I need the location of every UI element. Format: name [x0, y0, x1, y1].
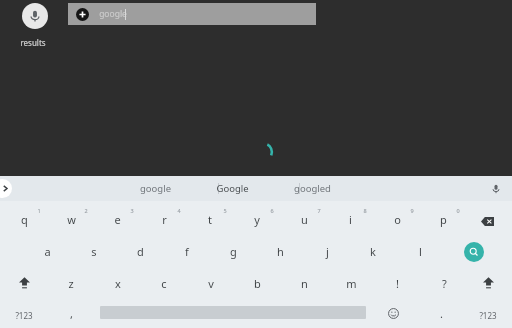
- staticText: 9: [410, 207, 414, 214]
- staticText: c: [161, 276, 167, 291]
- button[interactable]: 6: [249, 199, 295, 221]
- button[interactable]: Emoji: [385, 305, 401, 321]
- button[interactable]: q: [1, 208, 47, 230]
- staticText: results: [20, 37, 46, 48]
- button[interactable]: 1: [16, 199, 62, 221]
- staticText: ?123: [15, 310, 33, 321]
- staticText: ,: [70, 306, 73, 321]
- staticText: google: [140, 182, 171, 195]
- staticText: e: [114, 212, 121, 227]
- staticText: ?123: [479, 310, 497, 321]
- button[interactable]: Expand suggestions: [0, 179, 12, 198]
- staticText: 2: [84, 207, 88, 214]
- button[interactable]: f: [164, 240, 210, 262]
- button[interactable]: 7: [296, 199, 342, 221]
- staticText: 4: [177, 207, 181, 214]
- staticText: m: [346, 276, 357, 291]
- button[interactable]: l: [397, 240, 443, 262]
- button[interactable]: w: [48, 208, 94, 230]
- staticText: g: [230, 244, 237, 259]
- button[interactable]: Add: [76, 8, 89, 21]
- button[interactable]: c: [141, 272, 187, 294]
- staticText: k: [370, 244, 376, 259]
- staticText: ?: [442, 276, 447, 291]
- staticText: q: [21, 212, 28, 227]
- button[interactable]: a: [24, 240, 70, 262]
- staticText: 6: [270, 207, 274, 214]
- button[interactable]: Backspace: [473, 211, 501, 231]
- staticText: f: [185, 244, 189, 259]
- button[interactable]: Voice search: [22, 3, 48, 29]
- button[interactable]: Google: [192, 176, 272, 201]
- staticText: p: [440, 212, 447, 227]
- button[interactable]: s: [71, 240, 117, 262]
- button[interactable]: d: [117, 240, 163, 262]
- staticText: w: [67, 212, 76, 227]
- button[interactable]: p: [420, 208, 466, 230]
- button[interactable]: u: [281, 208, 327, 230]
- button[interactable]: 8: [342, 199, 388, 221]
- button[interactable]: 0: [435, 199, 481, 221]
- button[interactable]: m: [328, 272, 374, 294]
- button[interactable]: x: [95, 272, 141, 294]
- button[interactable]: 4: [156, 199, 202, 221]
- staticText: !: [396, 276, 399, 291]
- staticText: s: [91, 244, 97, 259]
- staticText: b: [254, 276, 261, 291]
- staticText: u: [301, 212, 308, 227]
- button[interactable]: 9: [389, 199, 435, 221]
- button[interactable]: ?123: [1, 304, 47, 326]
- button[interactable]: Search: [464, 242, 484, 262]
- button[interactable]: r: [141, 208, 187, 230]
- staticText: d: [137, 244, 144, 259]
- staticText: r: [162, 212, 167, 227]
- staticText: .: [440, 306, 443, 321]
- button[interactable]: 3: [109, 199, 155, 221]
- button[interactable]: y: [234, 208, 280, 230]
- button[interactable]: k: [350, 240, 396, 262]
- staticText: o: [394, 212, 401, 227]
- button[interactable]: !: [374, 272, 420, 294]
- staticText: y: [254, 212, 260, 227]
- button[interactable]: Voice input: [488, 181, 504, 197]
- staticText: v: [208, 276, 214, 291]
- button[interactable]: 5: [202, 199, 248, 221]
- staticText: t: [208, 212, 212, 227]
- staticText: 5: [223, 207, 227, 214]
- staticText: 8: [363, 207, 367, 214]
- button[interactable]: j: [304, 240, 350, 262]
- button[interactable]: Shift: [10, 273, 38, 293]
- staticText: 3: [130, 207, 134, 214]
- button[interactable]: 2: [63, 199, 109, 221]
- button[interactable]: ?123: [465, 304, 511, 326]
- staticText: Google: [216, 182, 249, 195]
- button[interactable]: .: [418, 302, 464, 324]
- staticText: z: [68, 276, 74, 291]
- staticText: 0: [456, 207, 460, 214]
- button[interactable]: b: [234, 272, 280, 294]
- button[interactable]: e: [94, 208, 140, 230]
- button[interactable]: Add: [68, 3, 316, 25]
- button[interactable]: z: [48, 272, 94, 294]
- staticText: 7: [317, 207, 321, 214]
- staticText: i: [349, 212, 352, 227]
- staticText: googled: [294, 182, 331, 195]
- button[interactable]: o: [374, 208, 420, 230]
- button[interactable]: t: [187, 208, 233, 230]
- button[interactable]: v: [188, 272, 234, 294]
- button[interactable]: google: [115, 176, 195, 201]
- button[interactable]: Shift: [474, 273, 502, 293]
- button[interactable]: googled: [272, 176, 352, 201]
- button[interactable]: h: [257, 240, 303, 262]
- button[interactable]: i: [327, 208, 373, 230]
- staticText: j: [326, 244, 329, 259]
- button[interactable]: g: [210, 240, 256, 262]
- staticText: h: [277, 244, 284, 259]
- button[interactable]: n: [281, 272, 327, 294]
- button[interactable]: ?: [421, 272, 467, 294]
- staticText: google: [99, 8, 127, 20]
- staticText: n: [301, 276, 308, 291]
- button[interactable]: ,: [48, 302, 94, 324]
- staticText: l: [419, 244, 422, 259]
